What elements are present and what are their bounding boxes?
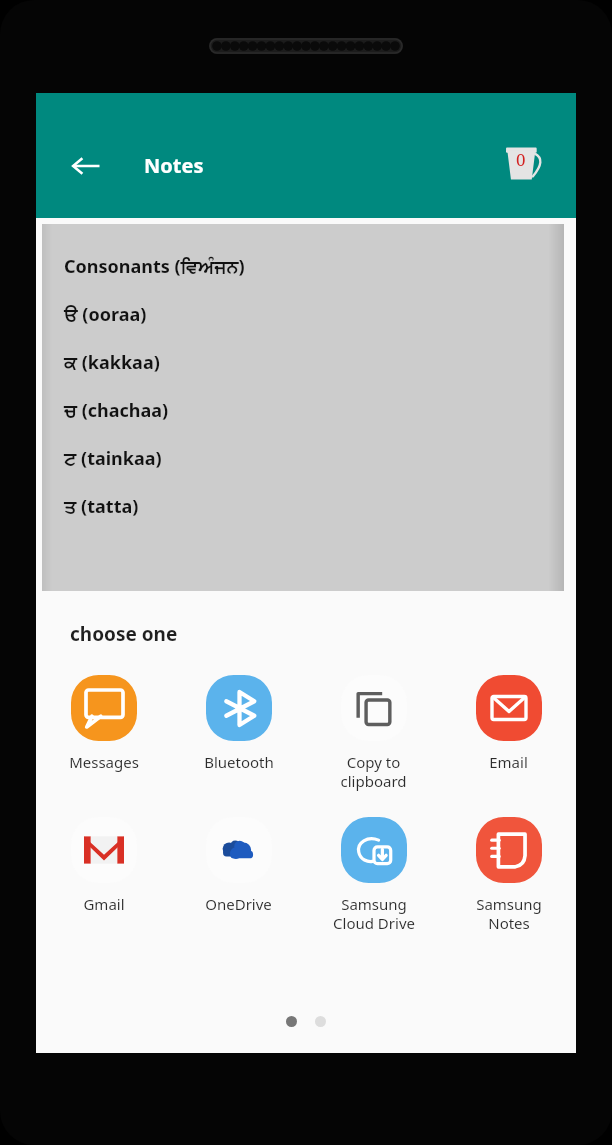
button[interactable]: OneDrive [171, 815, 306, 916]
button[interactable]: Copy to clipboard [306, 673, 441, 793]
staticText: OneDrive [205, 894, 272, 914]
button[interactable]: Back [62, 142, 110, 190]
button[interactable]: Consonants (ਵਿਅੰਜਨ) [42, 224, 564, 1053]
staticText: Gmail [83, 894, 125, 914]
button[interactable]: Bluetooth [171, 673, 306, 774]
button[interactable]: Samsung Cloud Drive [306, 815, 441, 935]
staticText: Samsung Cloud Drive [333, 894, 415, 933]
staticText: Consonants (ਵਿਅੰਜਨ) [64, 254, 245, 279]
staticText: ੳ (ooraa) [64, 302, 147, 327]
staticText: ਟ (tainkaa) [64, 446, 162, 471]
staticText: ਕ (kakkaa) [64, 350, 160, 375]
staticText: choose one [70, 621, 178, 647]
button[interactable]: Messages [36, 673, 171, 774]
staticText: ਚ (chachaa) [64, 398, 169, 423]
staticText: Samsung Notes [476, 894, 542, 933]
staticText: Messages [69, 752, 139, 772]
staticText: Bluetooth [204, 752, 274, 772]
staticText: ਤ (tatta) [64, 494, 139, 519]
staticText: Notes [144, 152, 204, 179]
button[interactable]: Samsung Notes [441, 815, 576, 935]
button[interactable]: Email [441, 673, 576, 774]
staticText: 0 [516, 148, 526, 171]
staticText: Copy to clipboard [340, 752, 407, 791]
button[interactable]: Recycle bin [496, 135, 554, 193]
button[interactable]: Gmail [36, 815, 171, 916]
staticText: Email [489, 752, 528, 772]
